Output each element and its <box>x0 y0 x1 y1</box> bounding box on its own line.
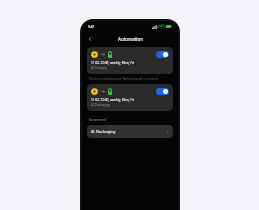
staticText: The task is invalid because "Battery Int… <box>89 77 159 81</box>
staticText: AC Discharging <box>91 129 116 134</box>
staticText: Automation <box>118 36 143 42</box>
staticText: AC Charging <box>91 66 107 70</box>
staticText: AC Discharging <box>91 103 111 107</box>
button[interactable]: Toggle automation <box>87 47 173 74</box>
button[interactable]: Back <box>85 34 95 44</box>
button[interactable]: Toggle automation <box>87 84 173 111</box>
staticText: 11:52-12:00, weekly, Mon, Fri <box>91 61 135 65</box>
staticText: 9:41 <box>88 25 95 29</box>
button[interactable]: AC Discharging <box>87 125 173 138</box>
staticText: 11:52-12:00, weekly, Mon, Fri <box>91 98 135 102</box>
button[interactable]: Toggle automation <box>156 88 169 95</box>
staticText: Recommend <box>89 118 106 122</box>
button[interactable]: Toggle automation <box>156 51 169 58</box>
